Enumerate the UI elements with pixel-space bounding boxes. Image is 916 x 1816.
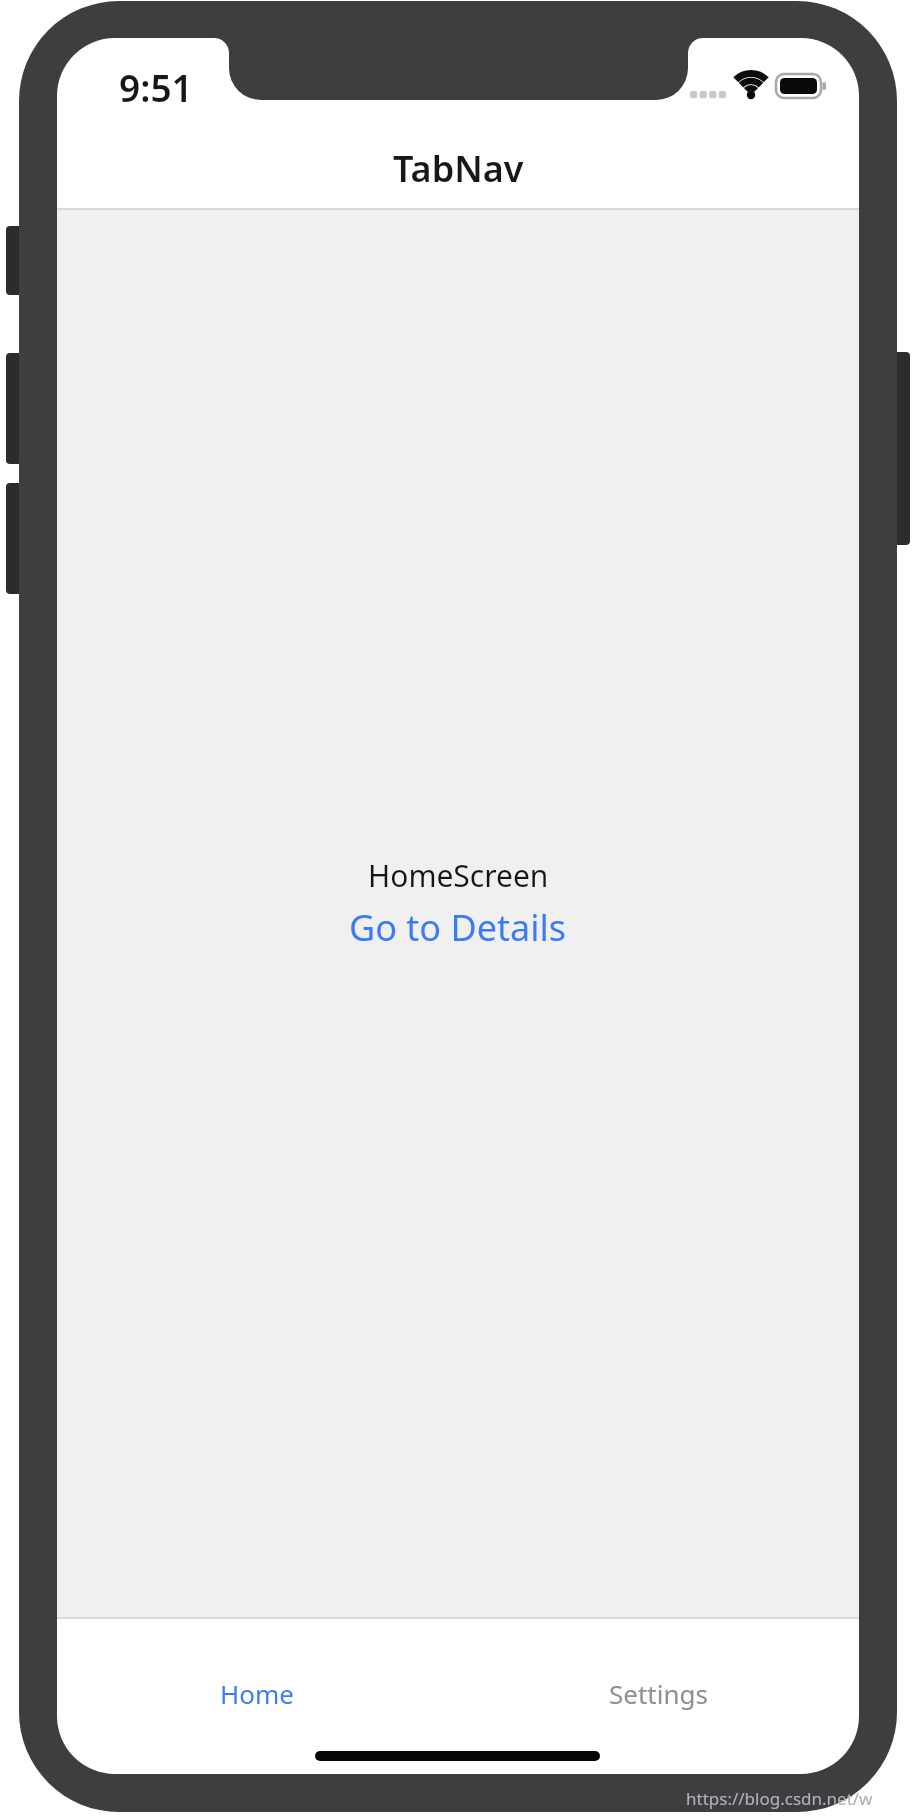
button[interactable]: Home [157, 1648, 357, 1738]
button[interactable]: Settings [558, 1648, 758, 1738]
staticText: https://blog.csdn.net/w [686, 1787, 873, 1810]
button[interactable]: Go to Details [288, 899, 628, 955]
staticText: TabNav [393, 144, 524, 193]
staticText: Settings [609, 1676, 708, 1711]
staticText: Go to Details [349, 903, 567, 952]
staticText: 9:51 [119, 62, 193, 110]
staticText: Home [220, 1676, 294, 1711]
staticText: HomeScreen [368, 855, 549, 896]
